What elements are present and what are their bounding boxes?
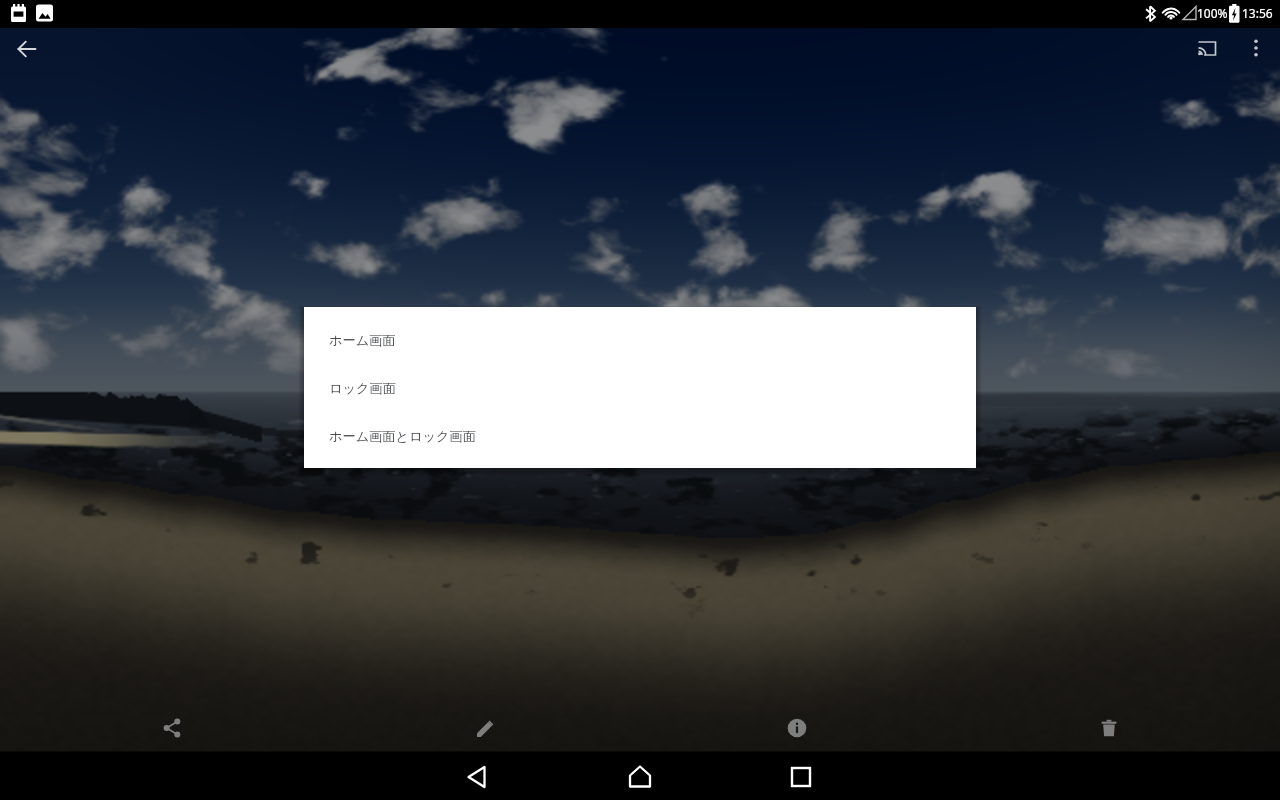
button[interactable]: Back: [399, 752, 559, 800]
staticText: ホーム画面とロック画面: [329, 428, 476, 445]
staticText: 100%: [1197, 5, 1228, 21]
button[interactable]: Back: [6, 28, 48, 70]
button[interactable]: ホーム画面とロック画面: [304, 412, 976, 460]
staticText: 13:56: [1242, 5, 1273, 21]
button[interactable]: ホーム画面: [304, 316, 976, 364]
button[interactable]: Share: [150, 706, 194, 750]
button[interactable]: Cast: [1186, 28, 1228, 70]
button[interactable]: Recents: [720, 752, 881, 800]
button[interactable]: Home: [559, 752, 720, 800]
button[interactable]: Info: [775, 706, 819, 750]
button[interactable]: Edit: [464, 706, 508, 750]
button[interactable]: More options: [1236, 28, 1276, 68]
staticText: ロック画面: [329, 380, 396, 397]
staticText: ホーム画面: [329, 332, 396, 349]
button[interactable]: Delete: [1087, 706, 1131, 750]
button[interactable]: ロック画面: [304, 364, 976, 412]
